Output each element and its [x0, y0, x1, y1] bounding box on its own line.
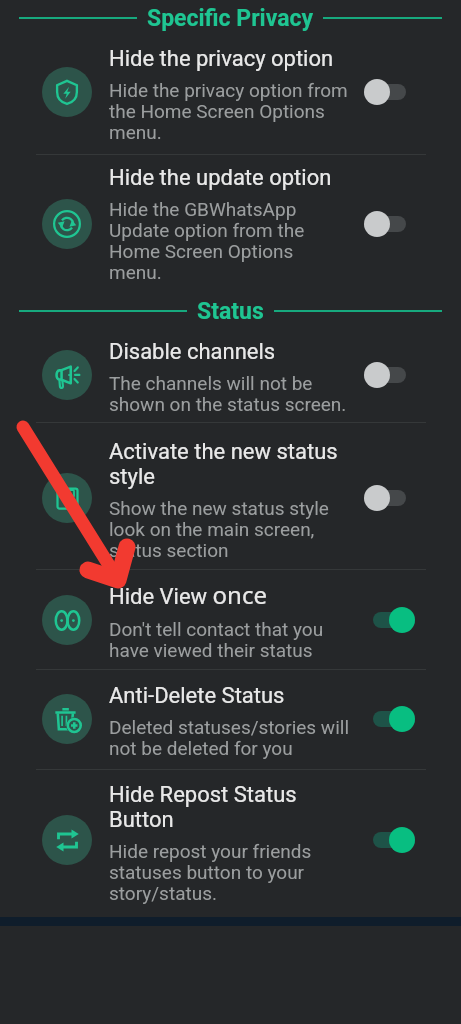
button[interactable] — [0, 30, 461, 154]
staticText: Hide repost your friends statuses button… — [109, 840, 312, 904]
staticText: Specific Privacy — [147, 5, 313, 32]
button[interactable]: Anti-Delete Status — [354, 698, 425, 740]
staticText: Hide View once — [109, 578, 267, 611]
staticText: Hide Repost Status Button — [109, 782, 297, 833]
staticText: Deleted statuses/stories will not be del… — [109, 716, 349, 759]
button[interactable]: Hide Repost Status Button — [354, 819, 425, 861]
staticText: Activate the new status style — [109, 439, 338, 490]
staticText: Don't tell contact that you have viewed … — [109, 618, 324, 661]
staticText: Hide the GBWhatsApp Update option from t… — [109, 198, 305, 283]
staticText: Show the new status style look on the ma… — [109, 497, 329, 561]
button[interactable] — [0, 670, 461, 769]
button[interactable]: Hide the update option — [354, 203, 425, 245]
staticText: The channels will not be shown on the st… — [109, 372, 347, 415]
staticText: Disable channels — [109, 339, 276, 365]
button[interactable] — [0, 770, 461, 915]
button[interactable]: Hide View — [354, 599, 425, 641]
staticText: Status — [197, 298, 264, 325]
button[interactable] — [0, 155, 461, 288]
button[interactable] — [0, 423, 461, 569]
staticText: Hide the privacy option — [109, 46, 334, 72]
staticText: Hide the update option — [109, 165, 332, 191]
button[interactable] — [0, 570, 461, 669]
button[interactable]: Hide the privacy option — [354, 71, 425, 113]
button[interactable]: Activate the new status style — [354, 477, 425, 519]
button[interactable]: Disable channels — [354, 354, 425, 396]
staticText: Hide the privacy option from the Home Sc… — [109, 79, 348, 143]
button[interactable] — [0, 332, 461, 422]
staticText: Anti-Delete Status — [109, 683, 285, 709]
